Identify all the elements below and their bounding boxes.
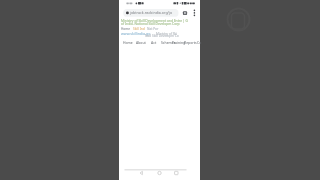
button[interactable]: Back [133, 169, 150, 180]
button[interactable]: Tabs [179, 7, 190, 19]
button[interactable]: Co [197, 40, 202, 45]
button[interactable]: About [136, 40, 146, 45]
button[interactable]: Reports [184, 40, 197, 45]
button[interactable]: Address bar [119, 9, 179, 17]
button[interactable]: More options [190, 7, 200, 19]
button[interactable]: Home [121, 27, 131, 31]
button[interactable]: www.skillindia.go [121, 31, 151, 36]
button[interactable]: Schemes [161, 40, 176, 45]
button[interactable]: Skill Ind [133, 27, 145, 31]
staticText: Natl Skill Developm Co [145, 34, 179, 38]
button[interactable]: Training [172, 40, 186, 45]
staticText: Training [172, 40, 186, 45]
staticText: Nat Por [147, 27, 159, 31]
staticText: Act [151, 40, 157, 45]
staticText: www.skillindia.go [121, 31, 151, 36]
staticText: Reports [184, 40, 197, 45]
staticText: Schemes [161, 40, 176, 45]
button[interactable]: Act [151, 40, 157, 45]
button[interactable]: Home [123, 40, 133, 45]
staticText: Home [121, 27, 131, 31]
staticText: About [136, 40, 146, 45]
button[interactable]: Ministry of Skill Development and Entre … [121, 18, 188, 26]
staticText: jobtrack.nsdcindia.org/jo [130, 10, 173, 15]
staticText: Home [123, 40, 133, 45]
staticText: Co [197, 40, 202, 45]
button[interactable]: Recents [167, 169, 184, 180]
staticText: Skill Ind [133, 27, 145, 31]
button[interactable]: Home [150, 169, 167, 180]
staticText: Ministry of Ski [156, 32, 178, 36]
